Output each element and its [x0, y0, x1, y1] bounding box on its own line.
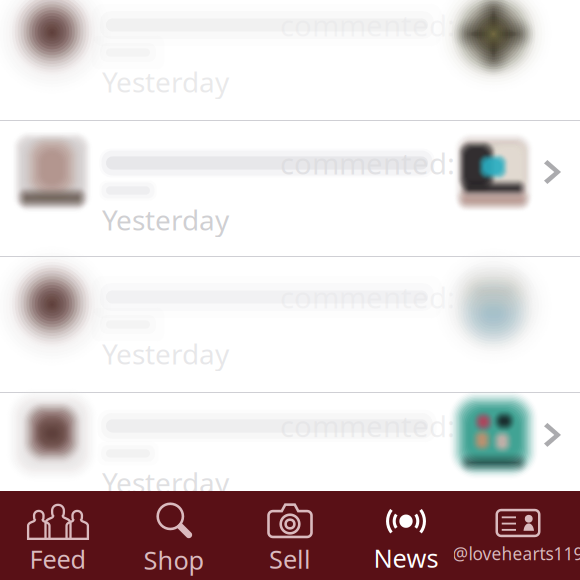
button[interactable]: Shop — [116, 491, 232, 580]
button[interactable]: commented: — [0, 1, 580, 120]
staticText: Yesterday — [102, 464, 229, 501]
staticText: Yesterday — [102, 63, 229, 100]
staticText: commented: — [280, 406, 455, 445]
button[interactable]: commented: — [0, 257, 580, 392]
button[interactable]: Feed — [0, 491, 116, 580]
staticText: Yesterday — [102, 201, 229, 238]
button[interactable]: commented: — [0, 393, 580, 490]
button[interactable]: News — [348, 491, 464, 580]
staticText: commented: — [280, 277, 455, 316]
button[interactable]: commented: — [0, 121, 580, 256]
staticText: @lovehearts119 — [452, 542, 580, 565]
staticText: Sell — [269, 542, 311, 576]
staticText: News — [373, 541, 438, 575]
button[interactable]: @lovehearts119 — [460, 491, 576, 580]
staticText: commented: — [280, 5, 455, 44]
button[interactable]: Sell — [232, 491, 348, 580]
staticText: Feed — [29, 542, 86, 576]
staticText: Shop — [143, 543, 204, 577]
staticText: commented: — [280, 143, 455, 182]
staticText: Yesterday — [102, 335, 229, 372]
